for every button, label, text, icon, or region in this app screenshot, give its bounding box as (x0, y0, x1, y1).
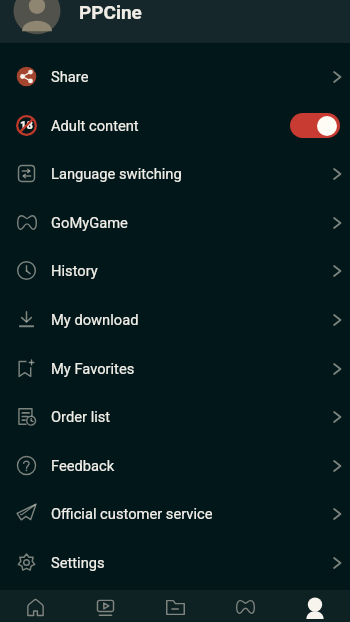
staticText: My Favorites (51, 360, 135, 377)
staticText: PPCine (79, 1, 142, 23)
staticText: Language switching (51, 165, 182, 182)
button[interactable]: My Favorites (0, 344, 350, 393)
button[interactable]: GoMyGame (0, 198, 350, 247)
staticText: Adult content (51, 117, 139, 134)
button[interactable]: Settings (0, 538, 350, 587)
staticText: Feedback (51, 457, 115, 474)
button[interactable]: History (0, 246, 350, 295)
button[interactable]: My download (0, 295, 350, 344)
button[interactable]: Feedback (0, 441, 350, 490)
staticText: Settings (51, 554, 105, 571)
button[interactable]: Games (210, 590, 280, 622)
button[interactable]: Official customer service (0, 489, 350, 538)
button[interactable]: Home (0, 590, 70, 622)
button[interactable]: Order list (0, 392, 350, 441)
button[interactable]: Library (140, 590, 210, 622)
staticText: Official customer service (51, 505, 213, 522)
button[interactable]: Language switching (0, 149, 350, 198)
button[interactable]: Videos (70, 590, 140, 622)
staticText: Share (51, 68, 89, 85)
staticText: My download (51, 311, 139, 328)
staticText: Order list (51, 408, 111, 425)
staticText: History (51, 262, 98, 279)
staticText: GoMyGame (51, 214, 128, 231)
button[interactable]: Profile (280, 590, 350, 622)
button[interactable]: 18 (0, 101, 350, 150)
button[interactable]: PPCine (0, 0, 350, 43)
button[interactable]: Adult content toggle (290, 113, 340, 138)
staticText: 18 (20, 119, 33, 132)
button[interactable]: Share (0, 52, 350, 101)
